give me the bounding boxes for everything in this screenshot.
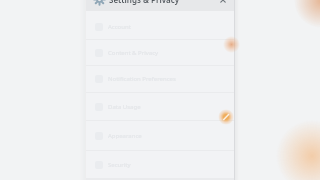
staticText: Content & Privacy: [108, 49, 159, 57]
button[interactable]: Account: [86, 14, 235, 40]
button[interactable]: Data Usage: [86, 93, 235, 121]
staticText: Appearance: [108, 132, 142, 140]
button[interactable]: Edit: [218, 109, 234, 125]
button[interactable]: Appearance: [86, 121, 235, 151]
staticText: Security: [108, 161, 131, 169]
button[interactable]: Notification Preferences: [86, 66, 235, 93]
button[interactable]: Close: [218, 0, 228, 5]
staticText: Account: [108, 23, 131, 31]
staticText: Settings & Privacy: [109, 0, 180, 5]
button[interactable]: Content & Privacy: [86, 40, 235, 66]
staticText: Data Usage: [108, 103, 141, 111]
staticText: Notification Preferences: [108, 75, 176, 83]
